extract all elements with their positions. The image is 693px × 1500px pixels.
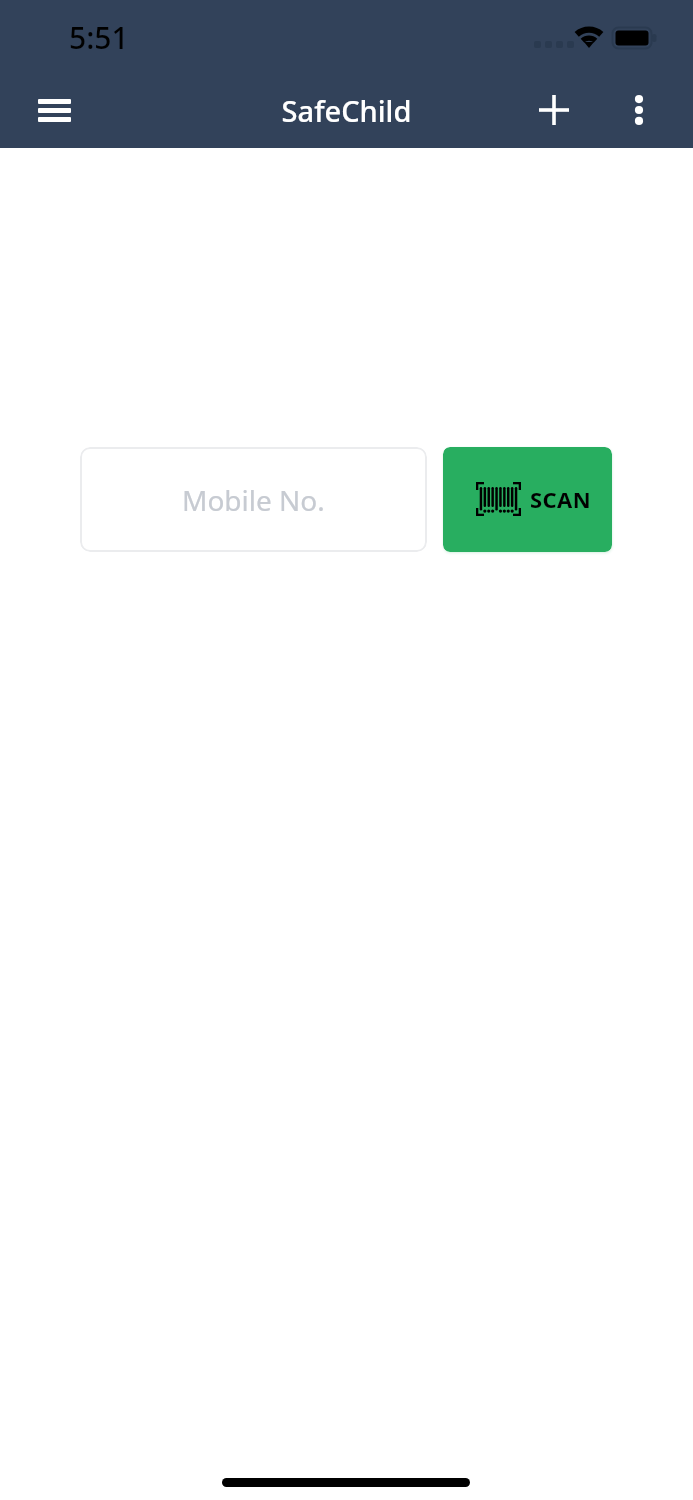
button[interactable]: Menu	[20, 76, 88, 144]
staticText: SCAN	[530, 484, 591, 514]
button[interactable]: SCAN	[443, 447, 612, 552]
staticText: SafeChild	[0, 91, 693, 130]
button[interactable]: Mobile No.	[80, 447, 427, 552]
staticText: 5:51	[69, 17, 129, 58]
button[interactable]: Add	[520, 76, 588, 144]
staticText: Mobile No.	[182, 481, 325, 519]
button[interactable]: More options	[605, 76, 673, 144]
